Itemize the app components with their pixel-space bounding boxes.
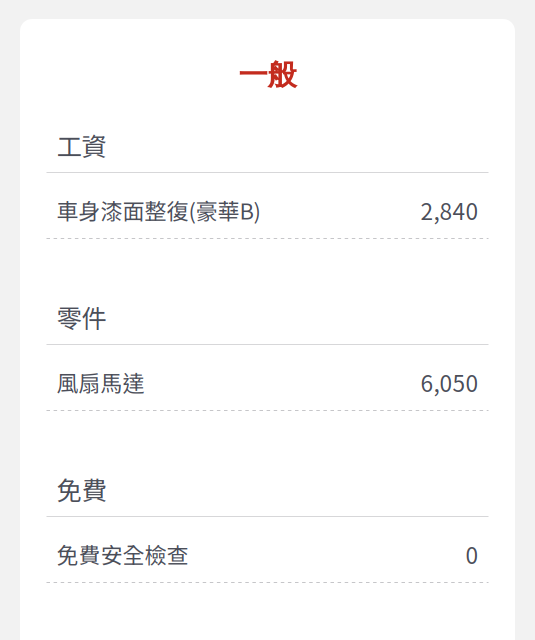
staticText: 一般 <box>238 56 296 93</box>
staticText: 免費 <box>56 471 106 507</box>
staticText: 免費安全檢查 <box>56 538 188 570</box>
button[interactable]: 車身漆面整復(豪華B) <box>46 190 488 230</box>
staticText: 2,840 <box>420 194 478 226</box>
button[interactable]: 風扇馬達 <box>46 362 488 402</box>
staticText: 0 <box>465 538 478 570</box>
staticText: 風扇馬達 <box>56 366 144 398</box>
staticText: 工資 <box>56 127 106 163</box>
staticText: 6,050 <box>420 366 478 398</box>
button[interactable]: 免費安全檢查 <box>46 534 488 574</box>
staticText: 車身漆面整復(豪華B) <box>56 194 260 226</box>
staticText: 零件 <box>56 299 106 335</box>
